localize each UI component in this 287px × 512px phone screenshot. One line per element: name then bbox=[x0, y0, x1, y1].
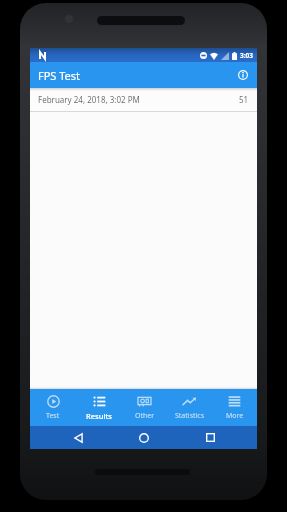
button[interactable]: Test bbox=[30, 389, 76, 426]
staticText: 3:03 bbox=[240, 51, 253, 60]
staticText: February 24, 2018, 3:02 PM bbox=[38, 94, 140, 105]
staticText: More bbox=[226, 411, 244, 421]
staticText: Test bbox=[46, 411, 60, 421]
button[interactable] bbox=[127, 426, 161, 449]
staticText: FPS Test bbox=[38, 68, 81, 83]
button[interactable]: More bbox=[212, 389, 257, 426]
staticText: Results bbox=[86, 411, 112, 421]
staticText: Other bbox=[135, 411, 155, 421]
staticText: 51 bbox=[239, 94, 249, 105]
button[interactable] bbox=[61, 426, 95, 449]
button[interactable] bbox=[193, 426, 227, 449]
button[interactable]: Results bbox=[76, 389, 122, 426]
button[interactable]: Other bbox=[122, 389, 167, 426]
button[interactable]: February 24, 2018, 3:02 PM bbox=[30, 88, 257, 112]
button[interactable]: Statistics bbox=[167, 389, 212, 426]
button[interactable] bbox=[237, 69, 249, 81]
staticText: Statistics bbox=[175, 411, 205, 421]
